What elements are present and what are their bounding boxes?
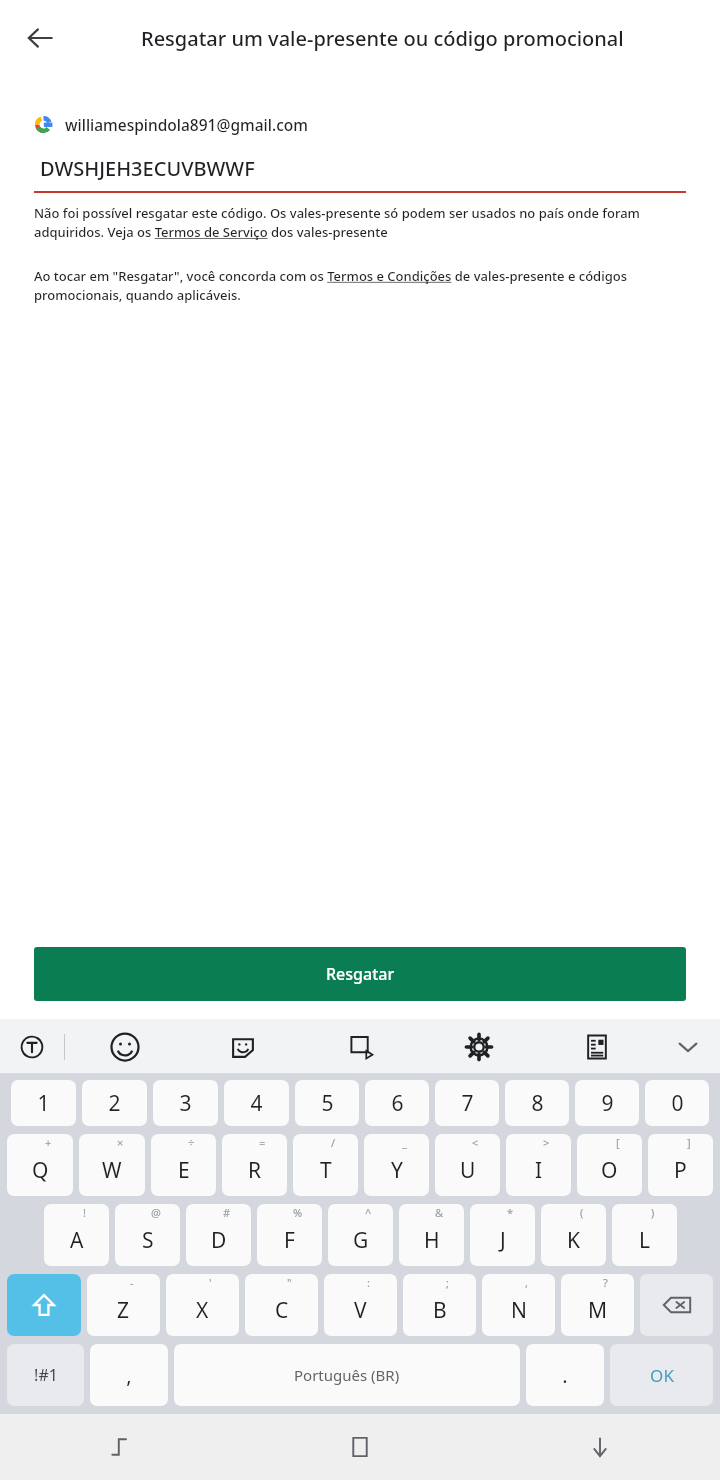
staticText: 1 bbox=[37, 1089, 50, 1118]
button[interactable]: 0 bbox=[645, 1080, 709, 1126]
staticText: : bbox=[367, 1275, 370, 1290]
staticText: N bbox=[511, 1296, 527, 1325]
staticText: DWSHJEH3ECUVBWWF bbox=[40, 155, 255, 182]
button[interactable]: @ bbox=[115, 1204, 180, 1266]
button[interactable]: % bbox=[257, 1204, 322, 1266]
button[interactable]: GIF bbox=[302, 1019, 420, 1074]
staticText: ; bbox=[446, 1275, 449, 1290]
button[interactable]: 6 bbox=[365, 1080, 429, 1126]
staticText: Y bbox=[391, 1156, 403, 1185]
staticText: ] bbox=[687, 1135, 691, 1150]
staticText: @ bbox=[151, 1205, 161, 1220]
button[interactable]: - bbox=[87, 1274, 160, 1336]
button[interactable]: , bbox=[90, 1344, 168, 1406]
button[interactable]: + bbox=[7, 1134, 73, 1196]
button[interactable]: 9 bbox=[575, 1080, 639, 1126]
staticText: ! bbox=[83, 1205, 86, 1220]
staticText: P bbox=[674, 1156, 687, 1185]
staticText: O bbox=[601, 1156, 618, 1185]
button[interactable]: . bbox=[526, 1344, 604, 1406]
button[interactable]: Shift bbox=[7, 1274, 81, 1336]
staticText: OK bbox=[650, 1364, 674, 1387]
staticText: - bbox=[130, 1275, 134, 1290]
staticText: williamespindola891@gmail.com bbox=[65, 114, 308, 135]
button[interactable]: !#1 bbox=[7, 1344, 84, 1406]
staticText: ^ bbox=[365, 1205, 372, 1220]
button[interactable]: Tradução bbox=[0, 1019, 64, 1074]
button[interactable]: " bbox=[245, 1274, 318, 1336]
staticText: Resgatar um vale-presente ou código prom… bbox=[141, 25, 624, 52]
button[interactable]: × bbox=[79, 1134, 145, 1196]
staticText: 2 bbox=[108, 1089, 121, 1118]
button[interactable]: Emoji bbox=[65, 1019, 184, 1074]
staticText: Não foi possível resgatar este código. O… bbox=[34, 204, 686, 241]
staticText: 4 bbox=[250, 1089, 263, 1118]
button[interactable]: ' bbox=[166, 1274, 239, 1336]
button[interactable]: ) bbox=[612, 1204, 677, 1266]
staticText: A bbox=[70, 1226, 84, 1255]
button[interactable]: ( bbox=[541, 1204, 606, 1266]
staticText: _ bbox=[402, 1135, 407, 1150]
staticText: 5 bbox=[321, 1089, 334, 1118]
staticText: Q bbox=[32, 1156, 49, 1185]
staticText: 7 bbox=[461, 1089, 474, 1118]
staticText: , bbox=[126, 1362, 132, 1389]
button[interactable]: 8 bbox=[505, 1080, 569, 1126]
staticText: . bbox=[562, 1362, 568, 1389]
button[interactable]: # bbox=[186, 1204, 251, 1266]
button[interactable]: Voltar bbox=[0, 1414, 240, 1480]
button[interactable]: 1 bbox=[11, 1080, 76, 1126]
button[interactable]: ] bbox=[648, 1134, 713, 1196]
button[interactable]: = bbox=[222, 1134, 287, 1196]
staticText: % bbox=[293, 1205, 303, 1220]
staticText: ? bbox=[603, 1275, 608, 1290]
button[interactable]: ! bbox=[44, 1204, 109, 1266]
staticText: F bbox=[284, 1226, 295, 1255]
staticText: R bbox=[248, 1156, 262, 1185]
staticText: 9 bbox=[601, 1089, 614, 1118]
staticText: L bbox=[639, 1226, 651, 1255]
staticText: ( bbox=[580, 1205, 584, 1220]
staticText: S bbox=[142, 1226, 154, 1255]
button[interactable]: Área de transferência bbox=[538, 1019, 656, 1074]
button[interactable]: ÷ bbox=[151, 1134, 216, 1196]
button[interactable]: 2 bbox=[82, 1080, 147, 1126]
button[interactable]: / bbox=[293, 1134, 358, 1196]
staticText: / bbox=[331, 1135, 336, 1150]
button[interactable]: * bbox=[470, 1204, 535, 1266]
button[interactable]: Apagar bbox=[640, 1274, 713, 1336]
button[interactable]: OK bbox=[610, 1344, 713, 1406]
button[interactable]: , bbox=[482, 1274, 555, 1336]
button[interactable]: ^ bbox=[328, 1204, 393, 1266]
button[interactable]: Stickers bbox=[184, 1019, 302, 1074]
staticText: T bbox=[320, 1156, 332, 1185]
staticText: ) bbox=[651, 1205, 655, 1220]
button[interactable]: < bbox=[435, 1134, 500, 1196]
button[interactable]: ? bbox=[561, 1274, 634, 1336]
button[interactable]: [ bbox=[577, 1134, 642, 1196]
staticText: 3 bbox=[179, 1089, 192, 1118]
button[interactable]: 7 bbox=[435, 1080, 499, 1126]
button[interactable]: _ bbox=[364, 1134, 429, 1196]
staticText: Português (BR) bbox=[294, 1365, 400, 1385]
staticText: J bbox=[500, 1226, 506, 1255]
button[interactable]: Português (BR) bbox=[174, 1344, 520, 1406]
button[interactable]: Início bbox=[240, 1414, 480, 1480]
button[interactable]: Ocultar teclado bbox=[480, 1414, 720, 1480]
button[interactable]: ; bbox=[403, 1274, 476, 1336]
button[interactable]: Configurações bbox=[420, 1019, 538, 1074]
staticText: I bbox=[535, 1156, 543, 1185]
button[interactable]: Voltar bbox=[12, 10, 68, 66]
button[interactable]: & bbox=[399, 1204, 464, 1266]
staticText: × bbox=[117, 1135, 124, 1150]
staticText: Resgatar bbox=[326, 963, 395, 985]
button[interactable]: : bbox=[324, 1274, 397, 1336]
button[interactable]: 3 bbox=[153, 1080, 218, 1126]
button[interactable]: > bbox=[506, 1134, 571, 1196]
button[interactable]: 4 bbox=[224, 1080, 289, 1126]
button[interactable]: Resgatar bbox=[34, 947, 686, 1001]
button[interactable]: Fechar bbox=[656, 1019, 720, 1074]
button[interactable]: 5 bbox=[295, 1080, 359, 1126]
staticText: 8 bbox=[531, 1089, 544, 1118]
staticText: = bbox=[259, 1135, 266, 1150]
